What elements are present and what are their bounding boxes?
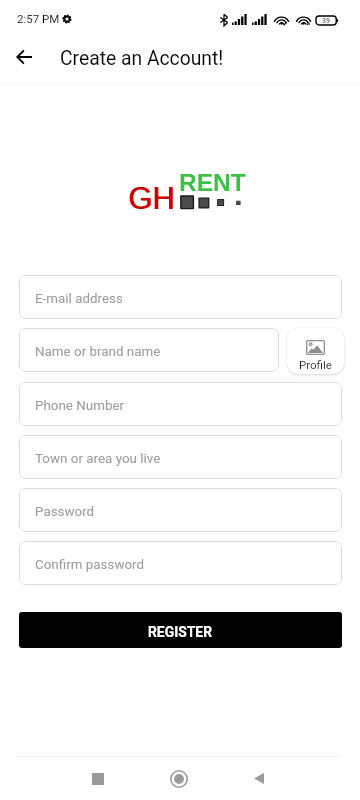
staticText: RENT [179, 169, 246, 196]
button[interactable]: Confirm password [19, 541, 342, 585]
button[interactable]: E-mail address [19, 275, 342, 319]
button[interactable]: Password [19, 488, 342, 532]
staticText: 2:57 PM [17, 12, 60, 25]
staticText: Password [35, 504, 95, 520]
staticText: Phone Number [35, 398, 125, 414]
button[interactable]: Phone Number [19, 382, 342, 426]
button[interactable]: Home [170, 770, 188, 788]
staticText: 39 [322, 17, 330, 25]
staticText: Profile [299, 358, 332, 371]
staticText: Name or brand name [35, 344, 161, 360]
button[interactable]: Name or brand name [19, 328, 279, 372]
staticText: Create an Account! [60, 47, 224, 70]
button[interactable]: Back [6, 39, 42, 75]
staticText: GH [128, 181, 175, 216]
staticText: Confirm password [35, 557, 145, 573]
staticText: E-mail address [35, 291, 123, 307]
staticText: GH [129, 181, 176, 216]
staticText: REGISTER [148, 624, 213, 640]
staticText: Town or area you live [35, 451, 161, 467]
button[interactable]: Back [254, 773, 264, 784]
button[interactable]: REGISTER [19, 612, 342, 648]
button[interactable]: Profile [287, 328, 344, 374]
button[interactable]: Town or area you live [19, 435, 342, 479]
